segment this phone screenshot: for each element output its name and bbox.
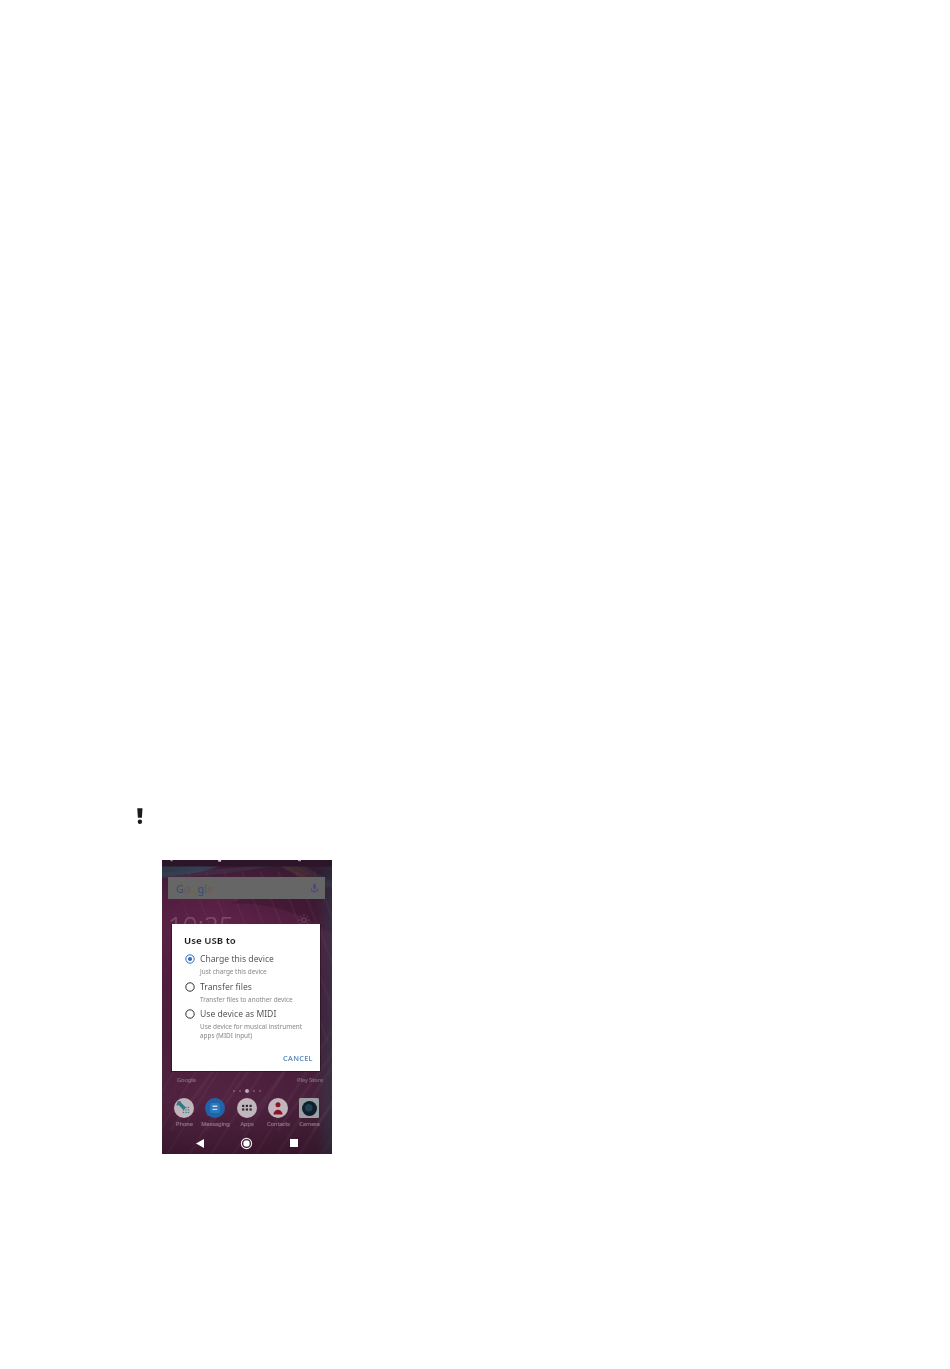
staticText: Apps [240,1120,254,1128]
button[interactable]: Transfer files [172,981,320,1004]
button[interactable]: CANCEL [281,1051,315,1065]
button[interactable]: Back [186,1132,213,1154]
staticText: Messaging [201,1120,230,1128]
staticText: Use device as MIDI [200,1008,277,1020]
button[interactable]: Camera [293,1098,325,1128]
button[interactable]: Phone [168,1098,200,1128]
button[interactable]: Home [233,1132,260,1154]
staticText: Google [176,881,214,896]
button[interactable]: Apps [231,1098,263,1128]
button[interactable]: Charge this device [172,953,320,976]
staticText: Camera [299,1120,320,1128]
staticText: CANCEL [283,1053,313,1063]
staticText: Charge this device [200,953,274,965]
staticText: Use USB to [184,934,236,947]
button[interactable]: Recents [280,1132,307,1154]
button[interactable]: Google [168,877,325,899]
button[interactable]: Contacts [262,1098,294,1128]
button[interactable]: Voice search [308,880,321,896]
staticText: Use device for musical instrument apps (… [200,1022,302,1040]
staticText: Google [177,1076,196,1084]
staticText: 10:25 [168,907,234,942]
staticText: Play Store [297,1076,324,1084]
staticText: Contacts [267,1120,290,1128]
staticText: Just charge this device [200,967,267,976]
button[interactable]: Messaging [199,1098,231,1128]
staticText: Phone [176,1120,193,1128]
staticText: Transfer files to another device [200,995,293,1004]
button[interactable]: Use device as MIDI [172,1008,320,1040]
staticText: Transfer files [200,981,252,993]
